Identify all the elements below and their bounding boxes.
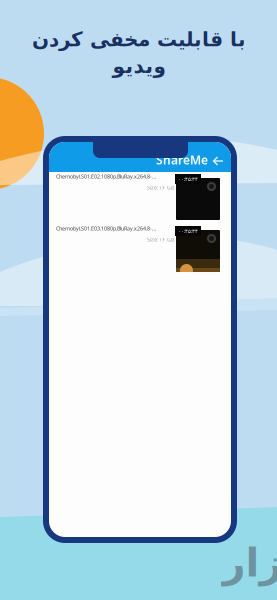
button[interactable]: Chernobyl.S01.E03.1080p.BluRay.x264.8-…: [49, 224, 231, 276]
staticText: Chernobyl.S01.E02.1080p.BluRay.x264.8-…: [56, 173, 156, 180]
button[interactable]: Chernobyl.S01.E02.1080p.BluRay.x264.8-…: [49, 172, 231, 224]
staticText: Size: ۱۶ GB: [147, 236, 174, 243]
staticText: بازار: [222, 540, 277, 585]
staticText: با قابلیت مخفی کردن: [31, 28, 245, 51]
staticText: ۰۰:۴۵:۳۴: [178, 227, 198, 235]
staticText: ویدیو: [112, 55, 165, 77]
button[interactable]: Back: [210, 153, 226, 169]
staticText: Chernobyl.S01.E03.1080p.BluRay.x264.8-…: [56, 225, 156, 232]
staticText: ShareMe: [156, 152, 208, 168]
staticText: ۰۰:۴۵:۳۴: [178, 175, 198, 183]
staticText: Size: ۱۶ GB: [147, 184, 174, 191]
